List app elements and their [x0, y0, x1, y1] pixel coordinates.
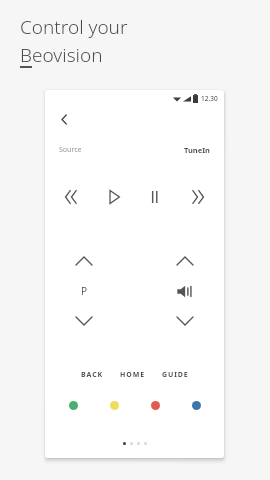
- button[interactable]: TuneIn: [184, 145, 210, 155]
- staticText: 12.30: [201, 94, 218, 103]
- staticText: Source: [59, 145, 82, 155]
- staticText: HOME: [120, 370, 146, 380]
- button[interactable]: GUIDE: [160, 367, 191, 383]
- button[interactable]: BACK: [79, 367, 106, 383]
- button[interactable]: Pause: [140, 182, 170, 212]
- button[interactable]: Volume down: [172, 308, 198, 334]
- button[interactable]: Volume up: [172, 248, 198, 274]
- staticText: GUIDE: [162, 370, 189, 380]
- button[interactable]: Play: [99, 182, 129, 212]
- button[interactable]: Green: [63, 395, 83, 415]
- staticText: P: [81, 284, 88, 298]
- button[interactable]: Mute: [172, 278, 198, 304]
- button[interactable]: Blue: [186, 395, 206, 415]
- button[interactable]: Back: [53, 108, 75, 130]
- staticText: Beovision: [20, 42, 103, 68]
- staticText: Control your: [20, 14, 128, 40]
- button[interactable]: Rewind: [57, 182, 87, 212]
- button[interactable]: Yellow: [104, 395, 124, 415]
- button[interactable]: Red: [145, 395, 165, 415]
- button[interactable]: Fast forward: [182, 182, 212, 212]
- button[interactable]: Program down: [71, 308, 97, 334]
- button[interactable]: Program up: [71, 248, 97, 274]
- button[interactable]: Program: [71, 278, 97, 304]
- staticText: TuneIn: [184, 145, 210, 155]
- staticText: BACK: [81, 370, 104, 380]
- button[interactable]: HOME: [118, 367, 148, 383]
